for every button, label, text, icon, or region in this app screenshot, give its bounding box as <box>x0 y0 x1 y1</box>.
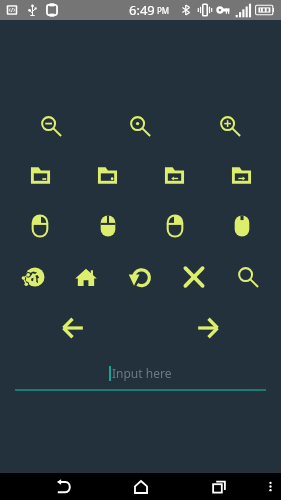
button[interactable]: New folder <box>74 160 141 190</box>
button[interactable]: Close <box>167 262 221 292</box>
button[interactable]: Previous <box>6 313 140 343</box>
button[interactable]: Back <box>45 473 81 500</box>
button[interactable]: Scroll <box>208 211 275 241</box>
button[interactable]: More options <box>258 473 281 500</box>
staticText: Input here <box>112 365 172 381</box>
button[interactable]: Left click <box>6 211 74 241</box>
button[interactable]: Home <box>123 473 159 500</box>
button[interactable]: Network <box>6 262 59 292</box>
button[interactable]: Both click <box>74 211 141 241</box>
button[interactable]: Zoom out <box>6 111 95 141</box>
button[interactable]: Move into folder <box>141 160 208 190</box>
button[interactable]: Home <box>59 262 113 292</box>
button[interactable]: Refresh <box>113 262 167 292</box>
button[interactable]: Search <box>221 262 275 292</box>
button[interactable]: Input here <box>15 357 266 388</box>
button[interactable]: Move out folder <box>208 160 275 190</box>
staticText: 6:49 <box>129 1 155 19</box>
staticText: PM <box>157 5 170 16</box>
button[interactable]: Next <box>140 313 275 343</box>
button[interactable]: Zoom in <box>185 111 275 141</box>
button[interactable]: Recents <box>201 473 237 500</box>
button[interactable]: Folder <box>6 160 74 190</box>
button[interactable]: Right click <box>141 211 208 241</box>
button[interactable]: Zoom actual <box>95 111 185 141</box>
